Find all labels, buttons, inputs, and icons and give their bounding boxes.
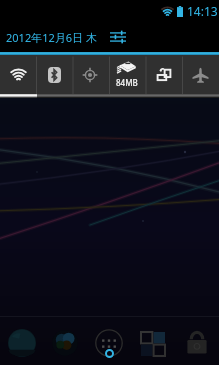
button[interactable]: Lock screen xyxy=(175,318,219,365)
button[interactable]: Calendar xyxy=(131,318,175,365)
button[interactable]: Play Store xyxy=(43,318,87,365)
button[interactable]: Airplane mode xyxy=(182,55,219,94)
button[interactable]: Location xyxy=(72,55,108,94)
button[interactable]: Browser xyxy=(0,318,43,365)
button[interactable]: Auto rotate xyxy=(145,55,182,94)
button[interactable]: Wi-Fi xyxy=(0,55,36,94)
button[interactable]: Home xyxy=(105,349,114,358)
button[interactable]: Settings xyxy=(110,31,126,43)
button[interactable]: Bluetooth xyxy=(36,55,72,94)
button[interactable]: Memory xyxy=(108,55,145,94)
staticText: 84MB xyxy=(116,77,138,88)
button[interactable]: Apps xyxy=(87,318,131,365)
staticText: 14:13 xyxy=(187,3,218,19)
staticText: 2012年12月6日 木 xyxy=(6,30,97,45)
